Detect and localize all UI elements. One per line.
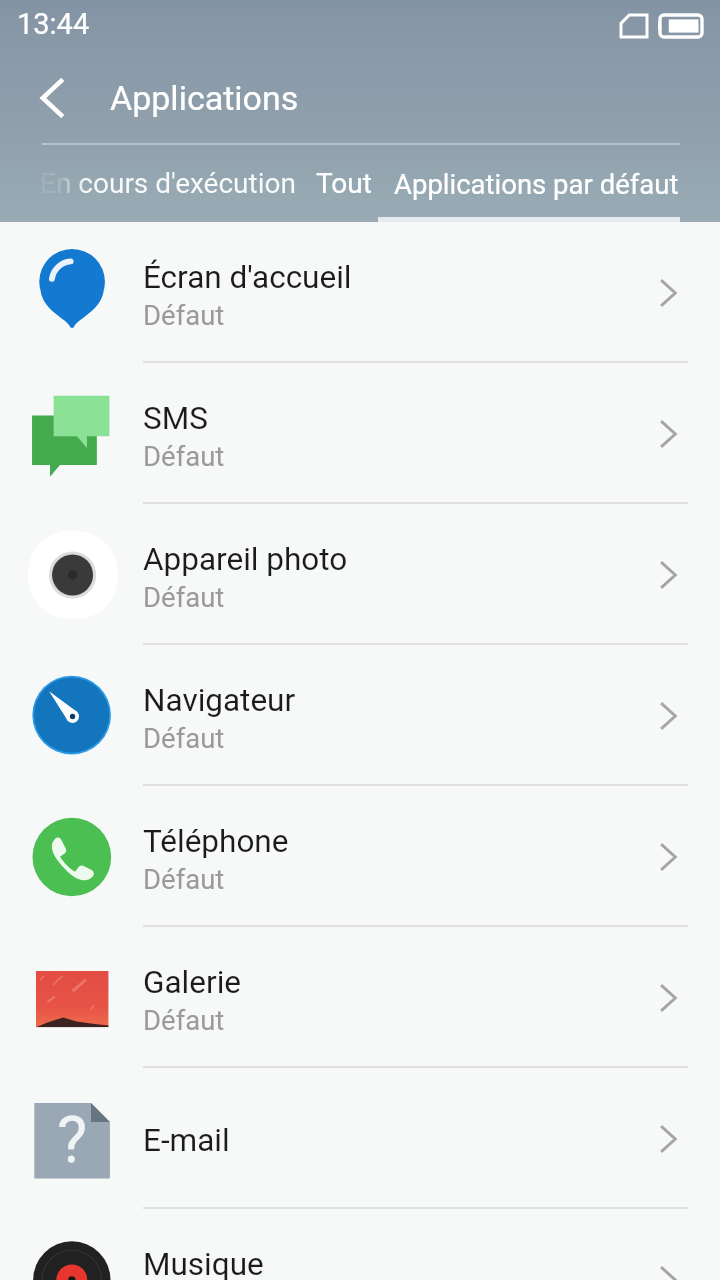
staticText: Applications par défaut	[394, 168, 679, 200]
staticText: 13:44	[17, 7, 90, 41]
button[interactable]: SMS	[0, 363, 720, 504]
staticText: Téléphone	[143, 823, 289, 860]
staticText: Musique	[143, 1246, 264, 1280]
staticText: ?	[57, 1103, 88, 1178]
button[interactable]: Galerie	[0, 927, 720, 1068]
button[interactable]: Applications par défaut	[394, 145, 679, 222]
staticText: Appareil photo	[143, 541, 348, 578]
staticText: E-mail	[143, 1122, 230, 1159]
button[interactable]: Back	[20, 65, 86, 131]
staticText: Applications	[110, 78, 299, 118]
staticText: Navigateur	[143, 682, 296, 719]
button[interactable]: ?	[0, 1068, 720, 1209]
staticText: Défaut	[143, 722, 225, 754]
staticText: SMS	[143, 400, 208, 437]
staticText: Défaut	[143, 299, 225, 331]
staticText: Défaut	[143, 440, 225, 472]
button[interactable]: Écran d'accueil	[0, 222, 720, 363]
staticText: Défaut	[143, 581, 225, 613]
button[interactable]: Navigateur	[0, 645, 720, 786]
button[interactable]: En cours d'exécution	[40, 145, 296, 222]
staticText: En cours d'exécution	[40, 167, 296, 200]
staticText: Écran d'accueil	[143, 259, 352, 296]
staticText: Défaut	[143, 1004, 225, 1036]
button[interactable]: Téléphone	[0, 786, 720, 927]
staticText: Tout	[316, 167, 372, 200]
button[interactable]: Musique	[0, 1209, 720, 1280]
button[interactable]: Tout	[316, 145, 372, 222]
staticText: Défaut	[143, 863, 225, 895]
staticText: Galerie	[143, 964, 241, 1001]
button[interactable]: Appareil photo	[0, 504, 720, 645]
